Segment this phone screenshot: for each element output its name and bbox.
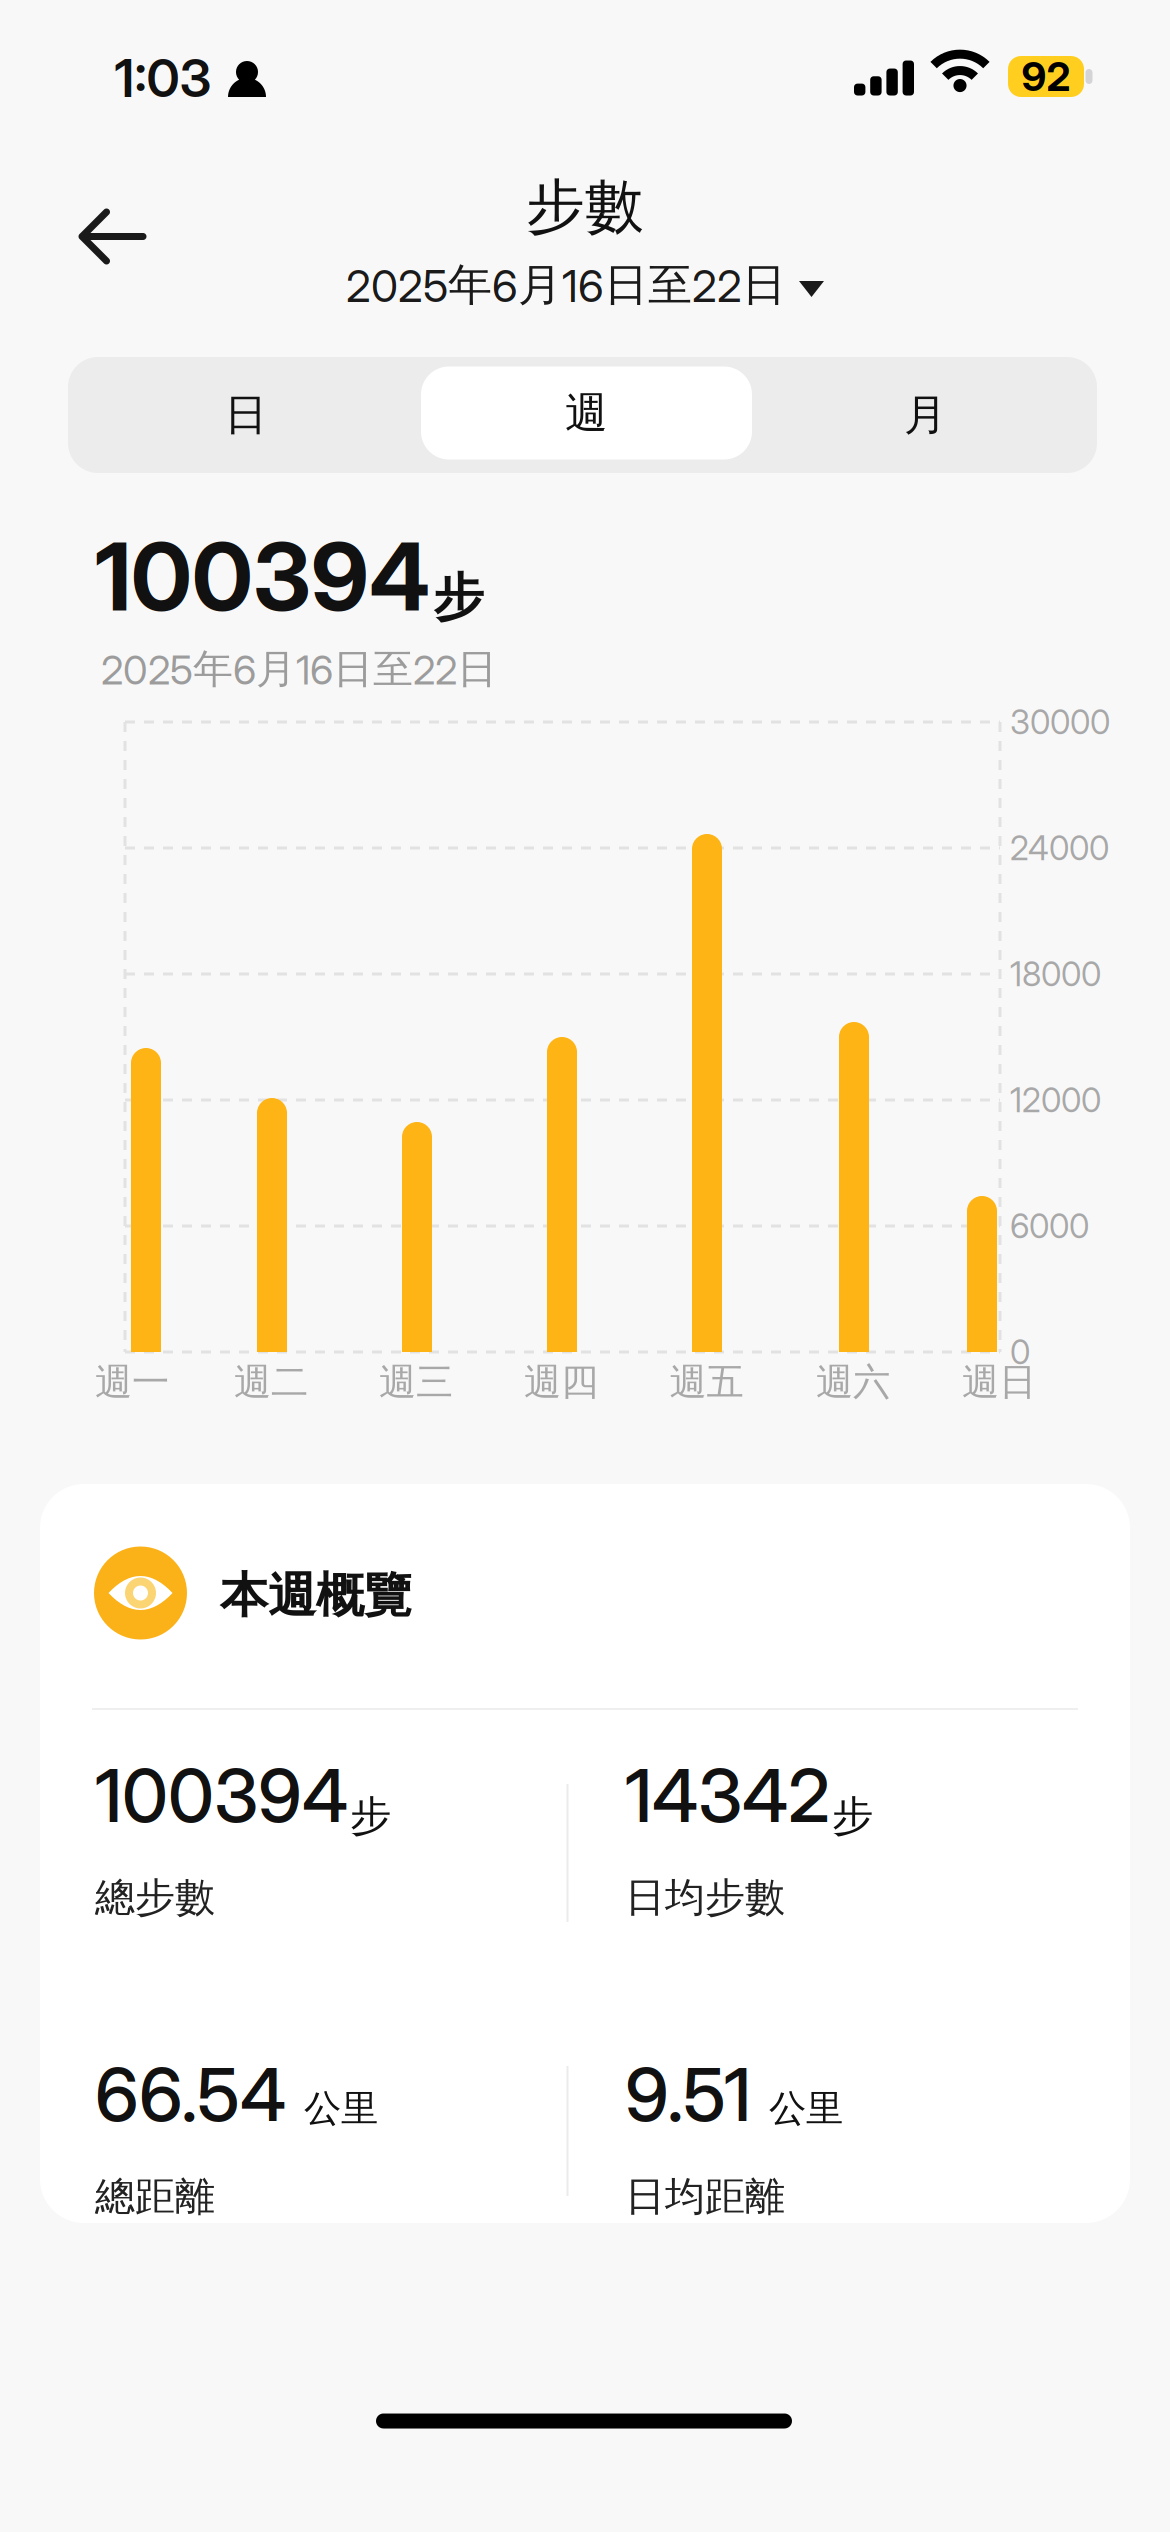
staticText: 2025年6月16日至22日 bbox=[346, 257, 786, 313]
staticText: 18000 bbox=[1010, 954, 1101, 994]
staticText: 100394 bbox=[95, 520, 430, 633]
staticText: 公里 bbox=[769, 2086, 843, 2132]
button[interactable] bbox=[68, 198, 157, 275]
staticText: 週二 bbox=[234, 1359, 308, 1405]
staticText: 24000 bbox=[1010, 828, 1109, 868]
button[interactable]: 週 bbox=[421, 366, 752, 459]
staticText: 步 bbox=[832, 1791, 873, 1842]
staticText: 66.54 bbox=[95, 2050, 286, 2139]
staticText: 日均步數 bbox=[625, 1873, 785, 1922]
staticText: 步 bbox=[433, 566, 484, 629]
staticText: 100394 bbox=[95, 1751, 348, 1840]
staticText: 週三 bbox=[379, 1359, 453, 1405]
staticText: 週六 bbox=[816, 1359, 890, 1405]
staticText: 2025年6月16日至22日 bbox=[101, 644, 497, 694]
staticText: 日均距離 bbox=[625, 2172, 785, 2221]
staticText: 總步數 bbox=[95, 1873, 215, 1922]
staticText: 總距離 bbox=[95, 2172, 215, 2221]
staticText: 12000 bbox=[1010, 1080, 1101, 1120]
staticText: 9.51 bbox=[625, 2050, 751, 2139]
staticText: 本週概覽 bbox=[220, 1566, 412, 1625]
staticText: 週日 bbox=[962, 1359, 1036, 1405]
staticText: 週一 bbox=[95, 1359, 169, 1405]
staticText: 6000 bbox=[1010, 1206, 1089, 1246]
staticText: 公里 bbox=[304, 2086, 378, 2132]
staticText: 92 bbox=[1021, 52, 1070, 101]
staticText: 週五 bbox=[669, 1359, 743, 1405]
staticText: 1:03 bbox=[114, 46, 211, 109]
staticText: 步數 bbox=[526, 171, 644, 243]
button[interactable]: 日 bbox=[74, 357, 417, 473]
button[interactable]: 2025年6月16日至22日 bbox=[346, 257, 824, 313]
staticText: 14342 bbox=[625, 1751, 830, 1840]
staticText: 週 bbox=[565, 387, 608, 439]
button[interactable]: 月 bbox=[754, 357, 1097, 473]
staticText: 步 bbox=[350, 1791, 391, 1842]
staticText: 週四 bbox=[524, 1359, 598, 1405]
staticText: 30000 bbox=[1010, 702, 1110, 742]
staticText: 月 bbox=[904, 389, 947, 441]
staticText: 0 bbox=[1010, 1332, 1030, 1372]
staticText: 日 bbox=[224, 389, 267, 441]
